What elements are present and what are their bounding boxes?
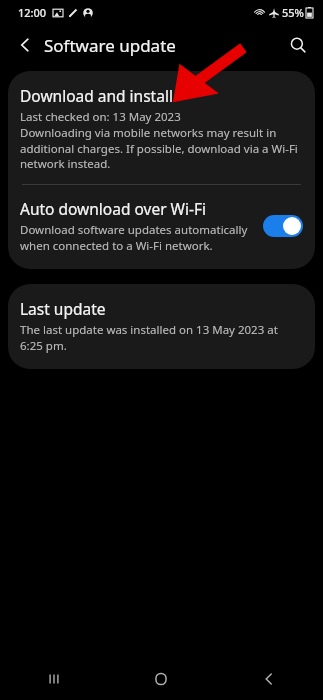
button[interactable]: Download and install — [8, 71, 315, 184]
button[interactable]: Home — [107, 658, 215, 700]
staticText: 55% — [282, 5, 304, 20]
staticText: Software update — [44, 34, 176, 57]
button[interactable]: Auto download over Wi-Fi toggle, on — [263, 215, 303, 237]
staticText: Download software updates automatically … — [20, 222, 255, 253]
staticText: Last update — [20, 298, 106, 319]
staticText: Auto download over Wi-Fi — [20, 198, 207, 219]
button[interactable]: Search — [281, 28, 315, 62]
staticText: Last checked on: 13 May 2023 — [20, 109, 181, 125]
button[interactable]: Back — [8, 28, 42, 62]
button[interactable]: Recent apps — [0, 658, 107, 700]
staticText: Download and install — [20, 85, 173, 106]
button[interactable]: Last update — [8, 284, 315, 369]
button[interactable]: Back — [215, 658, 323, 700]
staticText: The last update was installed on 13 May … — [20, 322, 297, 353]
button[interactable]: Auto download over Wi-Fi — [8, 185, 315, 269]
staticText: 12:00 — [18, 5, 47, 20]
staticText: Downloading via mobile networks may resu… — [20, 125, 301, 171]
